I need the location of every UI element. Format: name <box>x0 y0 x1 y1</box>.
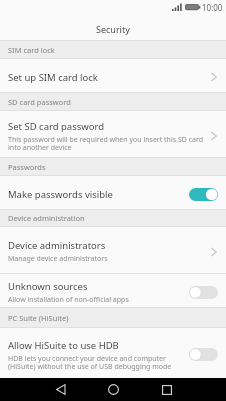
staticText: PC Suite (HiSuite) <box>8 313 69 323</box>
staticText: Device administrators <box>8 239 106 252</box>
staticText: Unknown sources <box>8 280 88 293</box>
button[interactable]: Device administrators <box>0 227 226 273</box>
button[interactable] <box>87 378 140 401</box>
staticText: SIM card lock <box>8 45 55 55</box>
staticText: Allow installation of non-official apps <box>8 295 129 305</box>
button[interactable] <box>34 378 87 401</box>
staticText: Set up SIM card lock <box>8 71 210 84</box>
staticText: This password will be required when you … <box>8 135 204 152</box>
button[interactable] <box>140 378 193 401</box>
button[interactable]: Unknown sources <box>0 274 226 307</box>
staticText: 10:00 <box>202 2 223 13</box>
staticText: Passwords <box>8 162 46 172</box>
staticText: Security <box>96 23 130 35</box>
button[interactable]: Set SD card password <box>0 111 226 157</box>
button[interactable]: Make passwords visible <box>0 176 226 209</box>
staticText: Set SD card password <box>8 120 105 133</box>
button[interactable]: Set up SIM card lock <box>0 59 226 92</box>
staticText: Manage device administrators <box>8 254 108 264</box>
staticText: Make passwords visible <box>8 188 189 201</box>
staticText: SD card password <box>8 97 71 107</box>
staticText: Allow HiSuite to use HDB <box>8 339 119 352</box>
button[interactable]: Allow HiSuite to use HDB <box>0 328 226 378</box>
staticText: HDB lets you connect your device and com… <box>8 354 172 371</box>
staticText: Device administration <box>8 213 85 223</box>
